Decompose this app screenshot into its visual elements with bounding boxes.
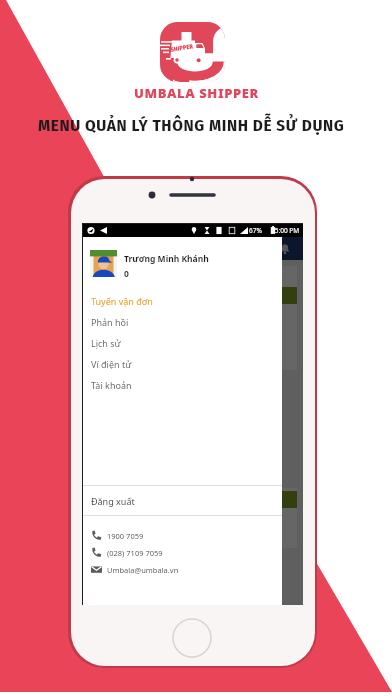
staticText: Ví điện tử [91, 358, 132, 370]
button[interactable]: Tuyến vận đơn [83, 290, 282, 311]
staticText: Đăng xuất [91, 495, 135, 507]
button[interactable]: Trương Minh Khánh [90, 250, 209, 277]
staticText: MENU QUẢN LÝ THÔNG MINH DỄ SỬ DỤNG [38, 115, 345, 135]
staticText: 67% [249, 226, 262, 235]
button[interactable]: Đăng xuất [83, 486, 282, 515]
staticText: Lịch sử [91, 337, 121, 349]
button[interactable]: 1900 7059 [83, 530, 282, 541]
button[interactable]: Lịch sử [83, 332, 282, 353]
staticText: Trương Minh Khánh [124, 253, 209, 265]
button[interactable]: Umbala@umbala.vn [83, 564, 282, 575]
staticText: (028) 7109 7059 [107, 548, 163, 558]
staticText: UMBALA SHIPPER [134, 84, 259, 102]
button[interactable]: Phản hồi [83, 311, 282, 332]
button[interactable]: Ví điện tử [83, 353, 282, 374]
staticText: 0 [124, 268, 129, 280]
button[interactable]: Tài khoản [83, 374, 282, 395]
staticText: Umbala@umbala.vn [107, 565, 179, 575]
staticText: Phản hồi [91, 316, 129, 328]
staticText: Tài khoản [91, 379, 132, 391]
button[interactable]: (028) 7109 7059 [83, 547, 282, 558]
staticText: Tuyến vận đơn [91, 295, 153, 307]
staticText: 05:00 PM [271, 226, 300, 235]
staticText: 1900 7059 [107, 531, 144, 541]
